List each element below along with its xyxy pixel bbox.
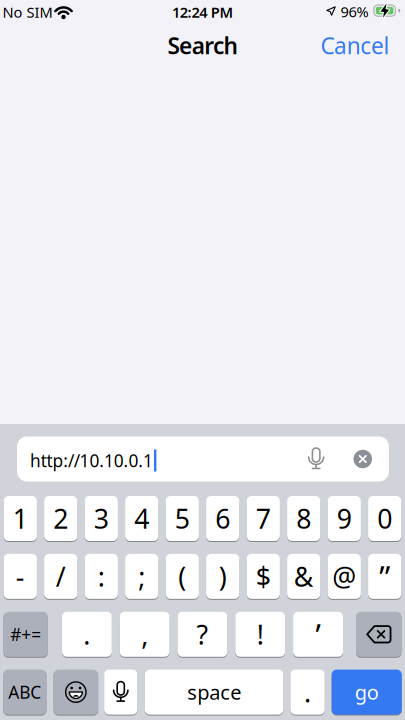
button[interactable]: @: [328, 553, 361, 599]
staticText: Cancel: [320, 30, 389, 60]
staticText: 1: [13, 501, 28, 536]
staticText: 2: [53, 501, 68, 536]
staticText: ”: [379, 556, 390, 597]
button[interactable]: 3: [85, 495, 118, 541]
button[interactable]: 8: [287, 495, 320, 541]
button[interactable]: Delete: [356, 611, 401, 657]
button[interactable]: !: [235, 611, 285, 657]
staticText: ?: [196, 617, 208, 652]
button[interactable]: :: [85, 553, 118, 599]
button[interactable]: /: [44, 553, 77, 599]
staticText: 6: [215, 501, 230, 536]
staticText: go: [355, 679, 379, 705]
button[interactable]: -: [4, 553, 37, 599]
staticText: No SIM: [2, 2, 52, 22]
staticText: 96%: [340, 2, 368, 21]
staticText: (: [178, 559, 186, 594]
button[interactable]: Dictation: [308, 448, 324, 470]
staticText: .: [83, 617, 90, 652]
staticText: 3: [94, 501, 109, 536]
button[interactable]: 9: [328, 495, 361, 541]
button[interactable]: 7: [247, 495, 280, 541]
staticText: :: [98, 559, 105, 594]
button[interactable]: $: [247, 553, 280, 599]
button[interactable]: ?: [177, 611, 227, 657]
button[interactable]: &: [287, 553, 320, 599]
staticText: ABC: [8, 681, 41, 704]
button[interactable]: 2: [44, 495, 77, 541]
button[interactable]: ABC: [3, 669, 46, 715]
staticText: 8: [296, 501, 311, 536]
staticText: ;: [138, 559, 145, 594]
staticText: space: [187, 679, 241, 705]
button[interactable]: 0: [368, 495, 401, 541]
button[interactable]: Cancel: [320, 30, 389, 60]
staticText: 4: [134, 501, 149, 536]
staticText: #+=: [10, 623, 41, 646]
button[interactable]: 1: [4, 495, 37, 541]
staticText: Search: [167, 30, 237, 60]
button[interactable]: 4: [125, 495, 158, 541]
staticText: ,: [141, 617, 148, 652]
staticText: 5: [175, 501, 190, 536]
staticText: &: [294, 559, 314, 594]
staticText: 7: [256, 501, 271, 536]
button[interactable]: ”: [368, 553, 401, 599]
staticText: ’: [316, 614, 321, 655]
staticText: .: [304, 674, 311, 710]
button[interactable]: .: [62, 611, 112, 657]
button[interactable]: go: [332, 669, 402, 715]
button[interactable]: ): [206, 553, 239, 599]
button[interactable]: ;: [125, 553, 158, 599]
staticText: 9: [337, 501, 352, 536]
staticText: ): [219, 559, 227, 594]
button[interactable]: (: [166, 553, 199, 599]
button[interactable]: space: [145, 669, 283, 715]
button[interactable]: .: [290, 669, 325, 715]
staticText: 0: [377, 501, 392, 536]
staticText: @: [332, 559, 356, 594]
staticText: -: [16, 559, 25, 594]
button[interactable]: 5: [166, 495, 199, 541]
staticText: http://10.10.0.1: [30, 449, 153, 472]
staticText: /: [56, 559, 66, 594]
button[interactable]: ,: [120, 611, 170, 657]
button[interactable]: 6: [206, 495, 239, 541]
button[interactable]: Emoji: [54, 669, 98, 715]
staticText: !: [257, 617, 264, 652]
button[interactable]: Dictation: [104, 669, 137, 715]
staticText: $: [256, 559, 271, 594]
staticText: 12:24 PM: [172, 2, 234, 22]
button[interactable]: Clear text: [353, 450, 372, 468]
button[interactable]: #+=: [3, 611, 48, 657]
button[interactable]: ’: [293, 611, 343, 657]
